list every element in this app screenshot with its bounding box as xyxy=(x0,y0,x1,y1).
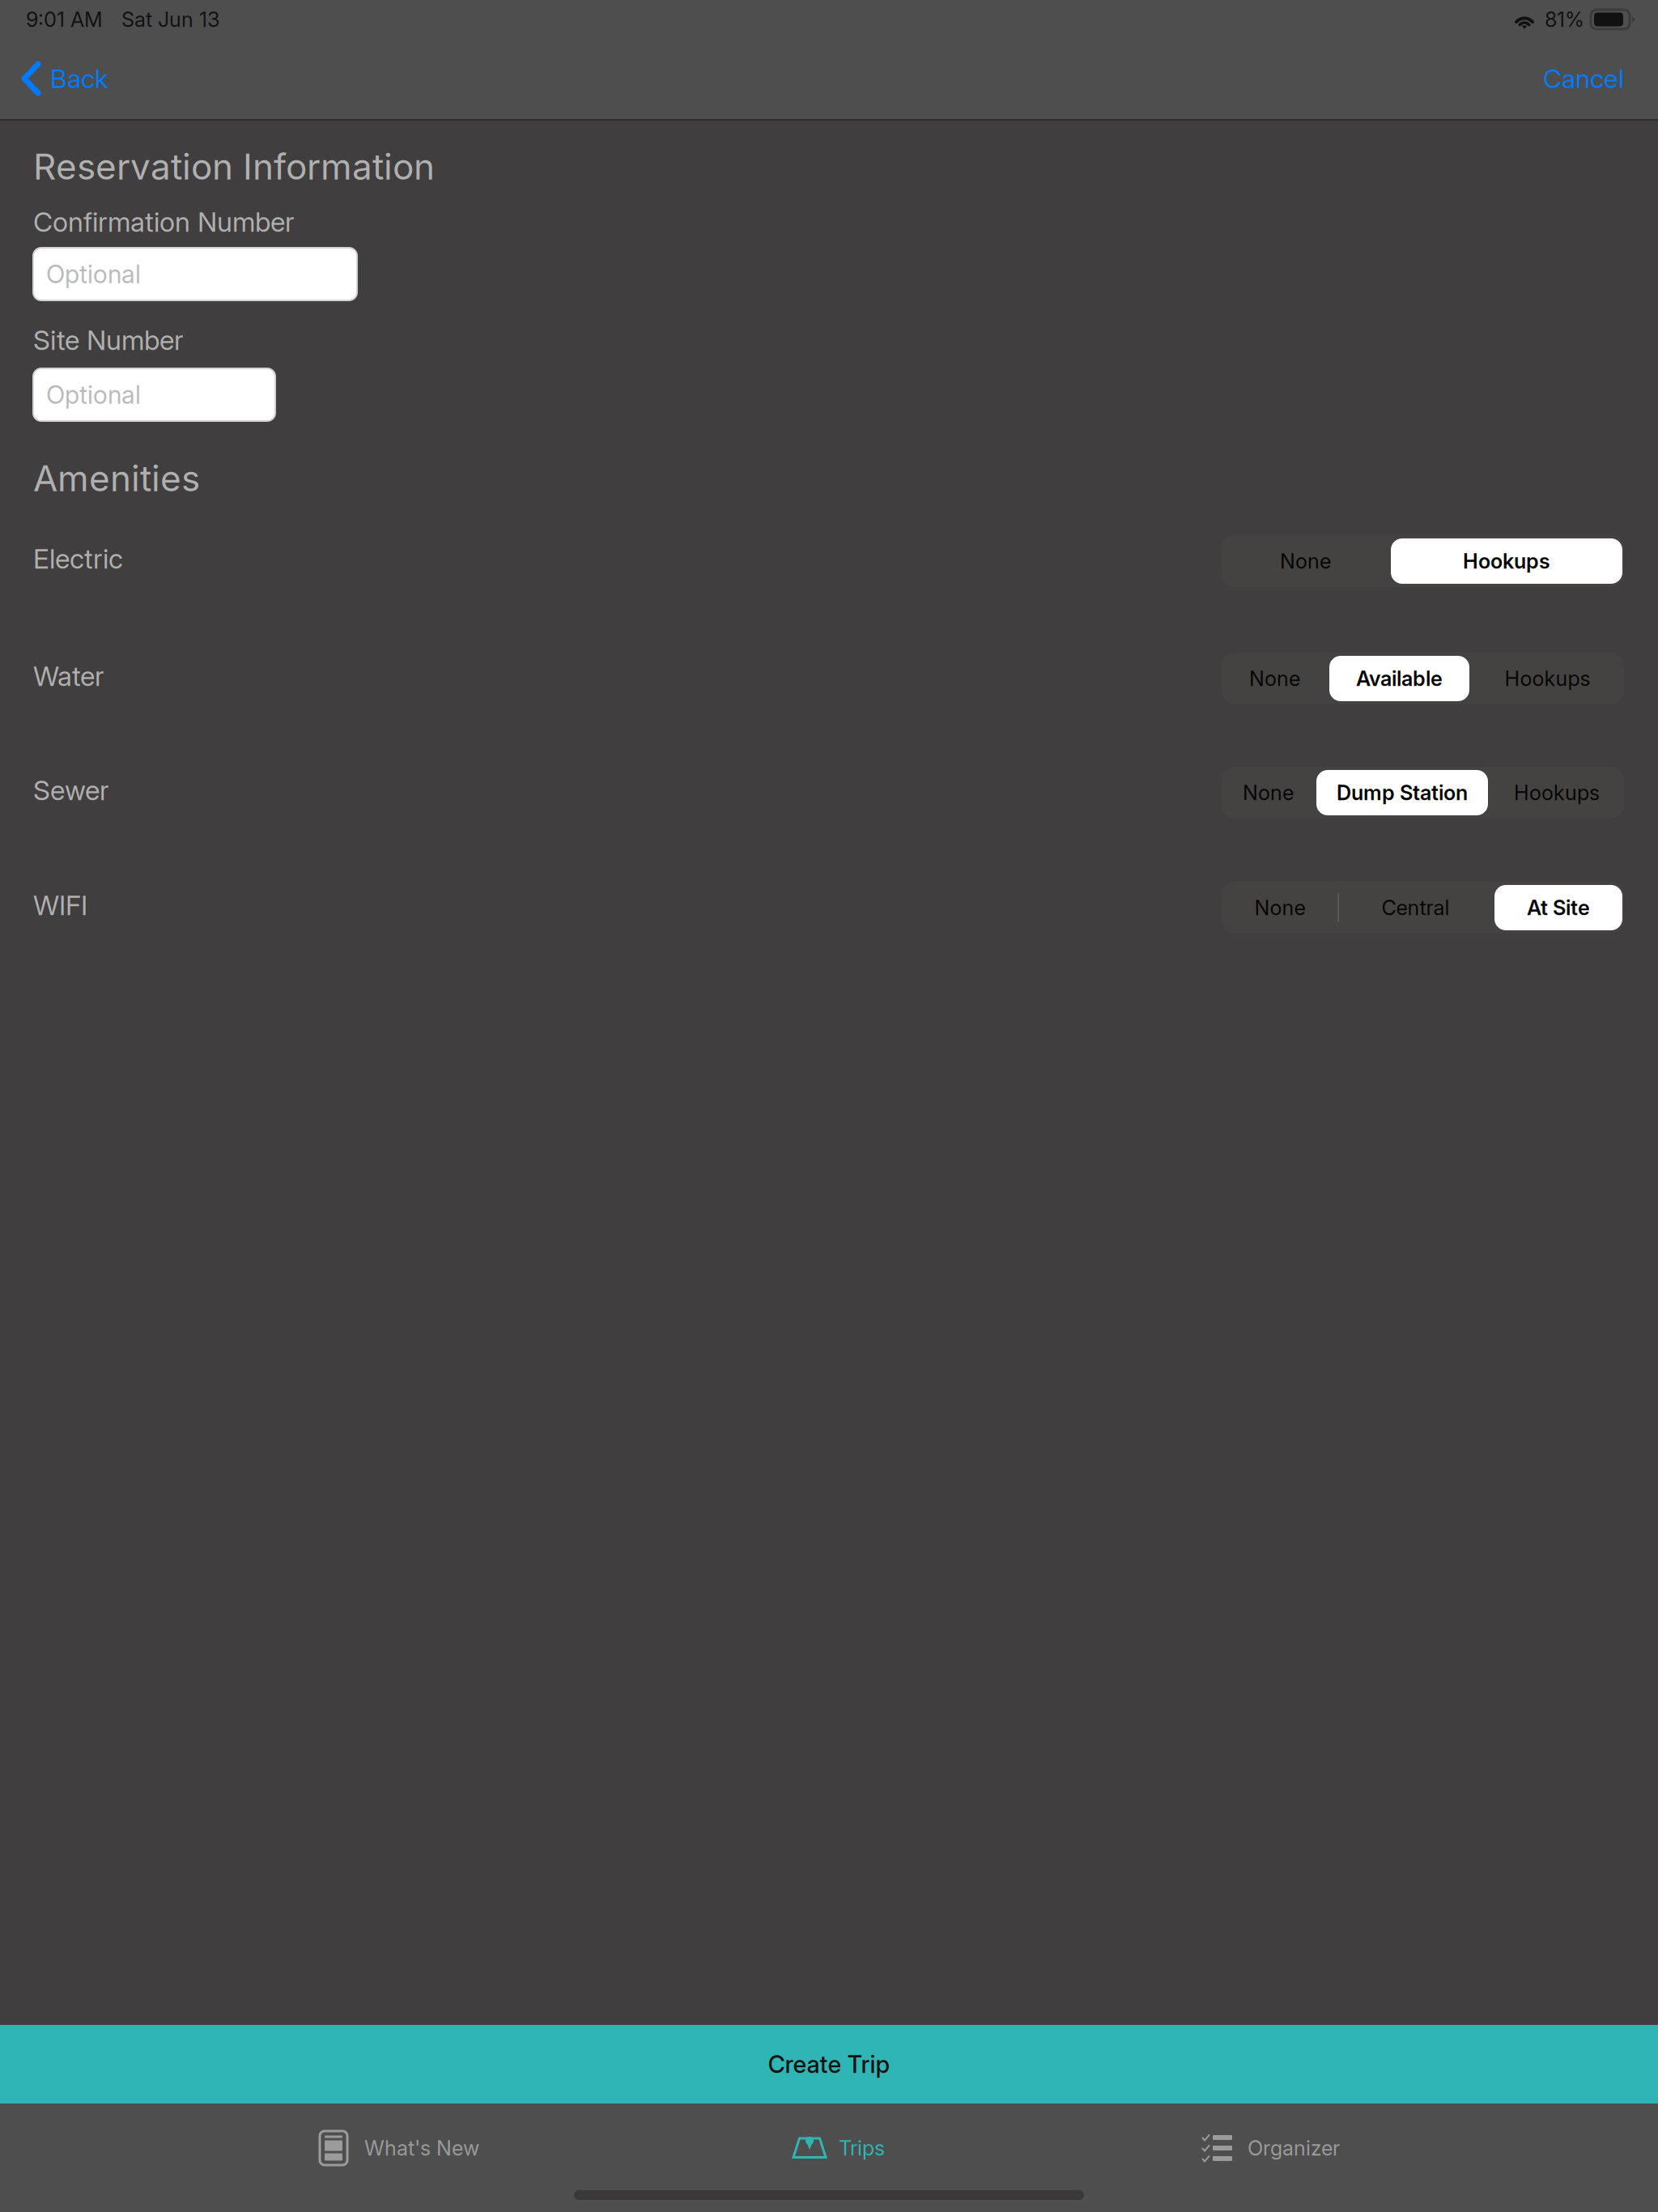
button[interactable]: None xyxy=(1222,882,1338,934)
staticText: At Site xyxy=(1527,895,1590,920)
button[interactable]: None xyxy=(1222,653,1328,704)
button[interactable]: Site Number xyxy=(33,368,275,421)
staticText: None xyxy=(1254,895,1305,920)
button[interactable]: Back xyxy=(0,42,130,115)
staticText: Hookups xyxy=(1463,549,1550,574)
staticText: 81% xyxy=(1545,7,1584,32)
button[interactable]: None xyxy=(1222,535,1389,587)
button[interactable]: Cancel xyxy=(1509,42,1658,115)
staticText: Site Number xyxy=(33,324,183,356)
staticText: WIFI xyxy=(33,889,87,922)
staticText: Hookups xyxy=(1514,780,1600,805)
staticText: None xyxy=(1243,780,1294,805)
staticText: Trips xyxy=(839,2136,885,2161)
button[interactable]: None xyxy=(1222,767,1315,819)
staticText: Central xyxy=(1382,895,1450,920)
button[interactable]: Hookups xyxy=(1389,535,1624,587)
button[interactable]: Available xyxy=(1328,653,1471,704)
button[interactable]: Organizer xyxy=(1105,2104,1658,2212)
staticText: Create Trip xyxy=(768,2050,890,2079)
staticText: Water xyxy=(33,660,104,693)
staticText: None xyxy=(1280,549,1331,574)
staticText: None xyxy=(1249,666,1300,691)
staticText: Sat Jun 13 xyxy=(121,7,220,32)
button[interactable]: Create Trip xyxy=(0,2025,1658,2104)
staticText: Electric xyxy=(33,542,123,575)
staticText: Amenities xyxy=(33,457,200,500)
button[interactable]: Confirmation Number xyxy=(33,248,357,300)
button[interactable]: Hookups xyxy=(1490,767,1624,819)
staticText: Hookups xyxy=(1505,666,1590,691)
staticText: Dump Station xyxy=(1337,780,1468,805)
button[interactable]: Central xyxy=(1338,882,1493,934)
button[interactable]: What's New xyxy=(0,2104,553,2212)
staticText: Cancel xyxy=(1543,63,1624,94)
staticText: Available xyxy=(1356,666,1443,691)
staticText: Confirmation Number xyxy=(33,206,294,238)
staticText: Optional xyxy=(46,380,141,410)
staticText: Organizer xyxy=(1248,2136,1340,2161)
button[interactable]: Hookups xyxy=(1471,653,1624,704)
button[interactable]: Trips xyxy=(553,2104,1105,2212)
staticText: What's New xyxy=(364,2136,479,2161)
staticText: Back xyxy=(50,63,108,94)
staticText: 9:01 AM xyxy=(26,7,103,32)
button[interactable]: At Site xyxy=(1493,882,1624,934)
button[interactable]: Dump Station xyxy=(1315,767,1490,819)
staticText: Reservation Information xyxy=(33,145,435,188)
staticText: Sewer xyxy=(33,774,108,807)
staticText: Optional xyxy=(46,259,141,289)
